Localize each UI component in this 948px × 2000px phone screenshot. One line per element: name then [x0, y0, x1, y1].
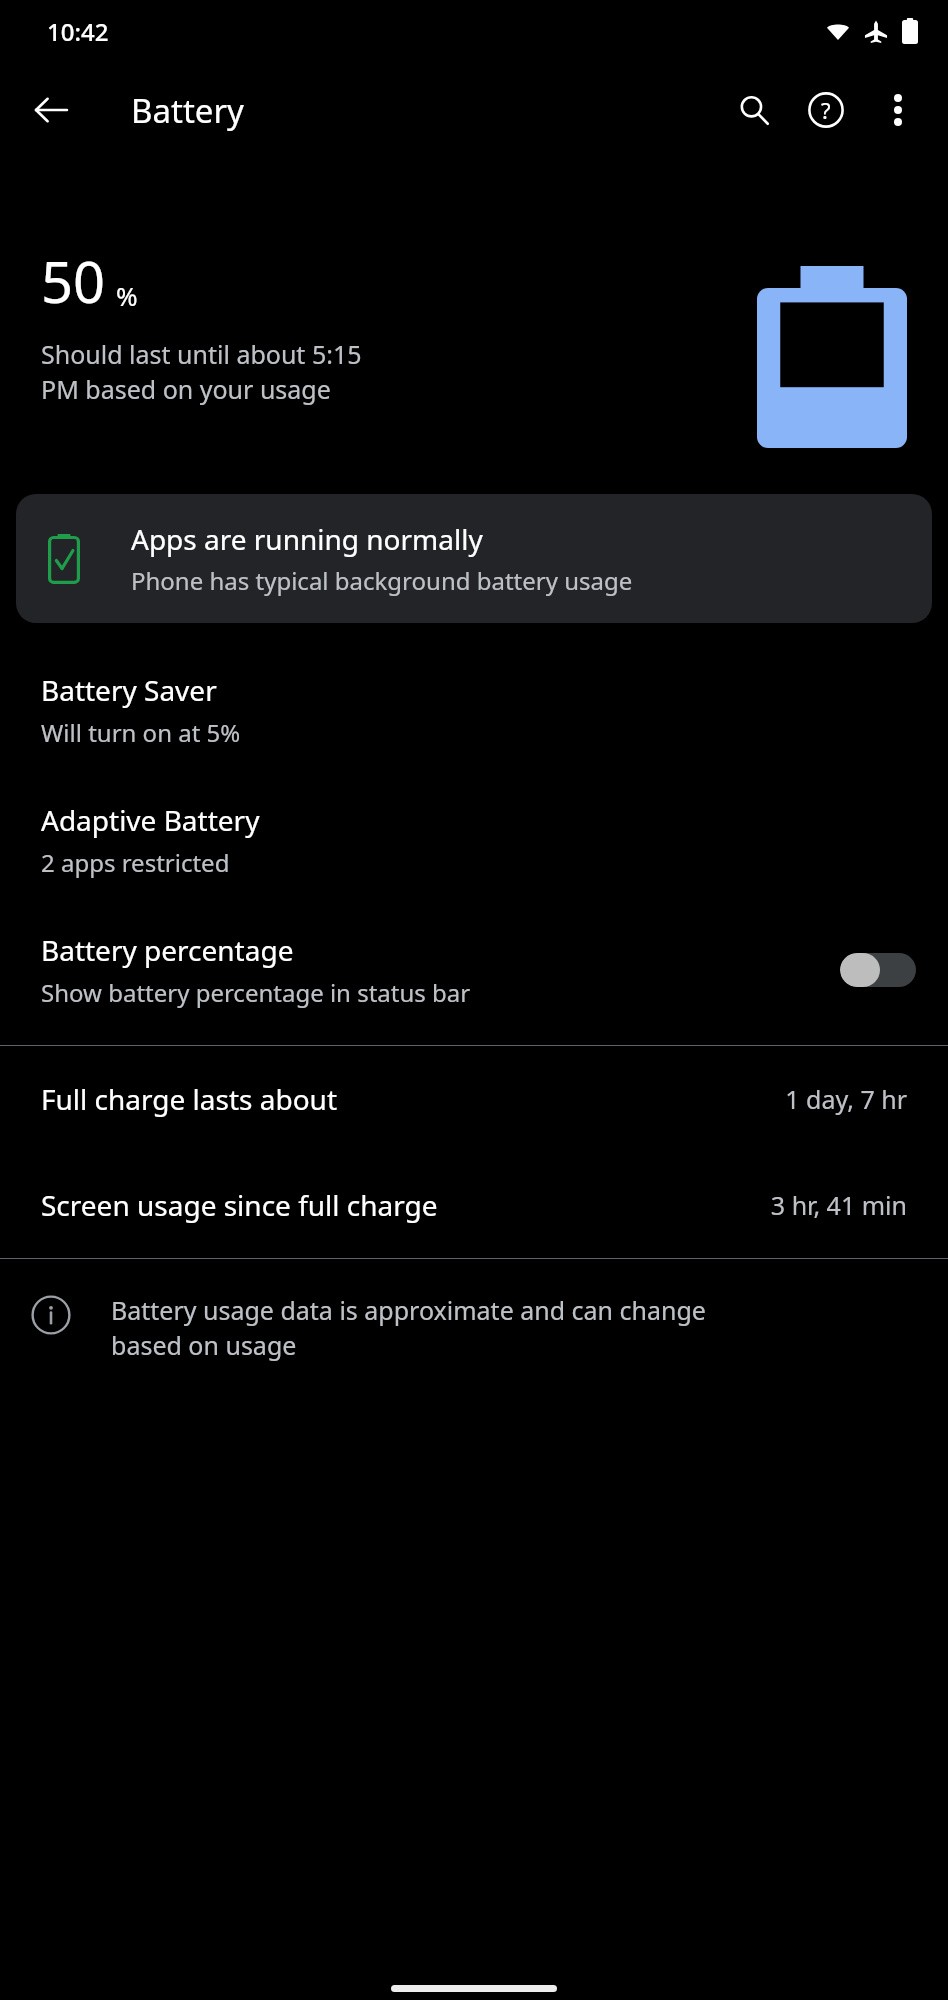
button[interactable]: Battery Saver	[0, 645, 948, 775]
button[interactable]: Battery percentage	[0, 905, 948, 1035]
staticText: Full charge lasts about	[41, 1080, 785, 1118]
staticText: Will turn on at 5%	[41, 716, 241, 749]
staticText: Should last until about 5:15 PM based on…	[41, 337, 362, 407]
button[interactable]: More options	[862, 74, 934, 146]
staticText: Battery	[131, 88, 244, 133]
staticText: Phone has typical background battery usa…	[131, 564, 633, 597]
button[interactable]: Screen usage since full charge	[0, 1152, 948, 1258]
button[interactable]: Adaptive Battery	[0, 775, 948, 905]
button[interactable]: Full charge lasts about	[0, 1046, 948, 1152]
staticText: 3 hr, 41 min	[770, 1188, 907, 1222]
staticText: 10:42	[47, 15, 109, 48]
staticText: Battery Saver	[41, 671, 217, 709]
staticText: 2 apps restricted	[41, 846, 230, 879]
staticText: Screen usage since full charge	[41, 1186, 770, 1224]
staticText: 1 day, 7 hr	[785, 1082, 907, 1116]
button[interactable]: Battery percentage toggle	[840, 953, 916, 987]
staticText: Adaptive Battery	[41, 801, 260, 839]
button[interactable]: Help	[790, 74, 862, 146]
button[interactable]: Search	[718, 74, 790, 146]
staticText: Show battery percentage in status bar	[41, 976, 471, 1009]
staticText: 50	[41, 243, 106, 319]
staticText: Battery percentage	[41, 931, 294, 969]
button[interactable]: Apps are running normally	[16, 494, 932, 623]
staticText: ?	[821, 95, 831, 125]
staticText: Apps are running normally	[131, 520, 483, 558]
button[interactable]: Back	[17, 76, 85, 144]
staticText: %	[116, 278, 138, 313]
staticText: Battery usage data is approximate and ca…	[111, 1293, 706, 1363]
